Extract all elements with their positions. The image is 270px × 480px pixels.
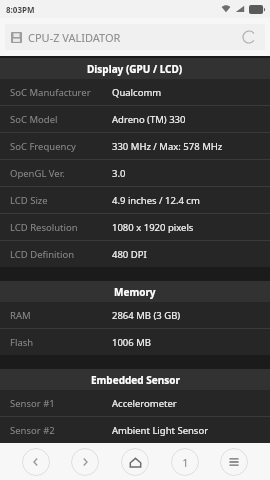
staticText: Qualcomm [112, 86, 162, 99]
staticText: 1080 x 1920 pixels [112, 221, 194, 234]
staticText: 2864 MB (3 GB) [112, 309, 181, 322]
staticText: 3.0 [112, 167, 126, 180]
staticText: 330 MHz / Max: 578 MHz [112, 140, 223, 153]
staticText: LCD Size [10, 194, 48, 207]
button[interactable]: Back [22, 448, 50, 476]
button[interactable]: Home [121, 448, 149, 476]
staticText: 480 DPI [112, 248, 147, 261]
staticText: Ambient Light Sensor [112, 424, 209, 437]
staticText: RAM [10, 309, 31, 322]
staticText: SoC Model [10, 113, 58, 126]
button[interactable]: Menu [220, 448, 248, 476]
staticText: Memory [114, 285, 156, 299]
staticText: 1006 MB [112, 336, 151, 349]
staticText: Sensor #2 [10, 424, 55, 437]
staticText: 1 [182, 455, 189, 470]
staticText: Adreno (TM) 330 [112, 113, 186, 126]
staticText: OpenGL Ver. [10, 167, 65, 180]
staticText: Embedded Sensor [91, 373, 180, 387]
button[interactable]: CPU-Z VALIDATOR [5, 24, 265, 50]
staticText: LCD Resolution [10, 221, 78, 234]
staticText: SoC Frequency [10, 140, 76, 153]
staticText: 4.9 inches / 12.4 cm [112, 194, 200, 207]
staticText: Display (GPU / LCD) [87, 62, 183, 76]
staticText: SoC Manufacturer [10, 86, 91, 99]
staticText: Sensor #1 [10, 397, 55, 410]
staticText: 8:03PM [6, 4, 35, 15]
staticText: Accelerometer [112, 397, 177, 410]
button[interactable]: Forward [71, 448, 99, 476]
button[interactable]: Reload [239, 27, 259, 47]
staticText: CPU-Z VALIDATOR [28, 30, 121, 45]
button[interactable]: Tabs [171, 448, 199, 476]
staticText: Flash [10, 336, 34, 349]
staticText: LCD Definition [10, 248, 75, 261]
